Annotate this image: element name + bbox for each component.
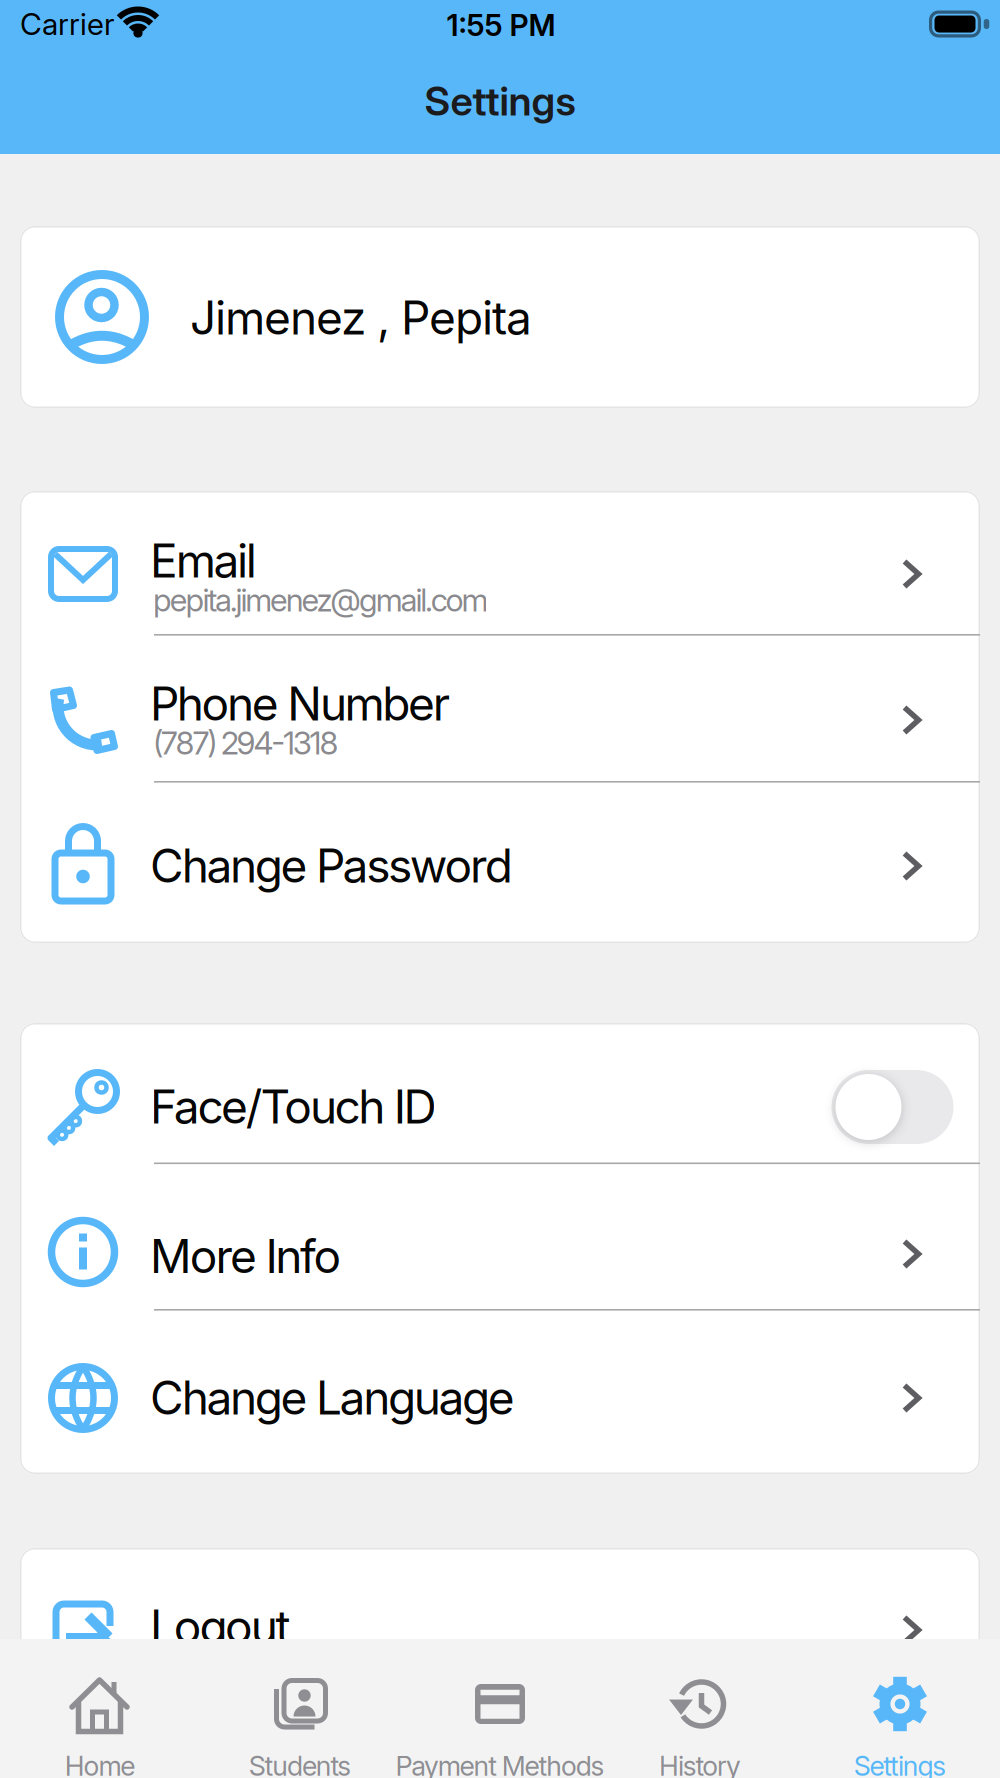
button[interactable]: Change Password: [20, 781, 980, 943]
button[interactable]: Change Language: [20, 1309, 980, 1474]
staticText: More Info: [150, 1228, 342, 1284]
staticText: Email: [150, 533, 257, 589]
button[interactable]: Face/Touch ID: [20, 1023, 980, 1162]
staticText: Jimenez , Pepita: [190, 290, 532, 346]
button[interactable]: More Info: [20, 1162, 980, 1309]
staticText: Change Password: [150, 838, 513, 894]
staticText: (787) 294-1318: [153, 724, 338, 762]
button[interactable]: Students: [200, 1639, 400, 1778]
button[interactable]: History: [600, 1639, 800, 1778]
button[interactable]: Email: [20, 491, 980, 634]
staticText: pepita.jimenez@gmail.com: [153, 581, 488, 619]
staticText: Phone Number: [150, 676, 450, 732]
staticText: Home: [65, 1750, 135, 1778]
staticText: Payment Methods: [395, 1750, 605, 1778]
staticText: Settings: [854, 1750, 946, 1778]
button[interactable]: Jimenez , Pepita: [20, 226, 980, 408]
button[interactable]: Home: [0, 1639, 200, 1778]
staticText: Students: [249, 1750, 351, 1778]
button[interactable]: Logout: [20, 1548, 980, 1708]
staticText: Face/Touch ID: [150, 1079, 436, 1135]
button[interactable]: Settings: [800, 1639, 1000, 1778]
button[interactable]: Payment Methods: [400, 1639, 600, 1778]
staticText: Carrier: [20, 6, 115, 42]
staticText: Settings: [424, 77, 575, 125]
staticText: Logout: [150, 1599, 290, 1655]
staticText: Change Language: [150, 1370, 515, 1426]
staticText: History: [659, 1750, 741, 1778]
button[interactable]: Phone Number: [20, 634, 980, 781]
staticText: 1:55 PM: [446, 7, 555, 43]
